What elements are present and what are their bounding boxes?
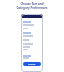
staticText: Choose Size and [20, 2, 44, 6]
staticText: Continue [28, 63, 36, 65]
staticText: Category Preferences [16, 6, 48, 10]
button[interactable]: Continue [23, 62, 41, 66]
